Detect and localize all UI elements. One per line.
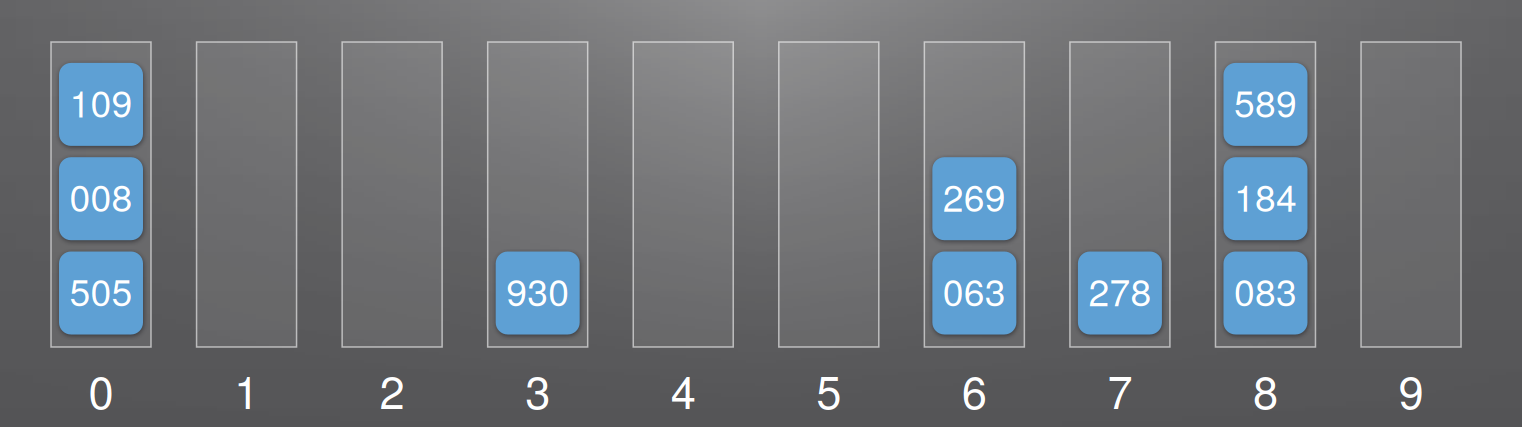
staticText: 6 xyxy=(962,357,987,422)
staticText: 184 xyxy=(1234,169,1297,222)
staticText: 063 xyxy=(943,263,1006,317)
staticText: 083 xyxy=(1234,263,1297,317)
staticText: 5 xyxy=(816,357,841,422)
staticText: 4 xyxy=(671,357,696,422)
staticText: 589 xyxy=(1234,75,1297,128)
staticText: 2 xyxy=(380,357,405,422)
staticText: 278 xyxy=(1088,263,1151,317)
staticText: 008 xyxy=(69,169,132,222)
staticText: 3 xyxy=(525,357,550,422)
staticText: 8 xyxy=(1253,357,1278,422)
staticText: 930 xyxy=(506,263,569,317)
staticText: 7 xyxy=(1107,357,1132,422)
staticText: 1 xyxy=(234,357,259,422)
staticText: 9 xyxy=(1398,357,1423,422)
staticText: 269 xyxy=(943,169,1006,222)
staticText: 109 xyxy=(69,75,132,128)
staticText: 505 xyxy=(69,263,132,317)
staticText: 0 xyxy=(88,357,113,422)
